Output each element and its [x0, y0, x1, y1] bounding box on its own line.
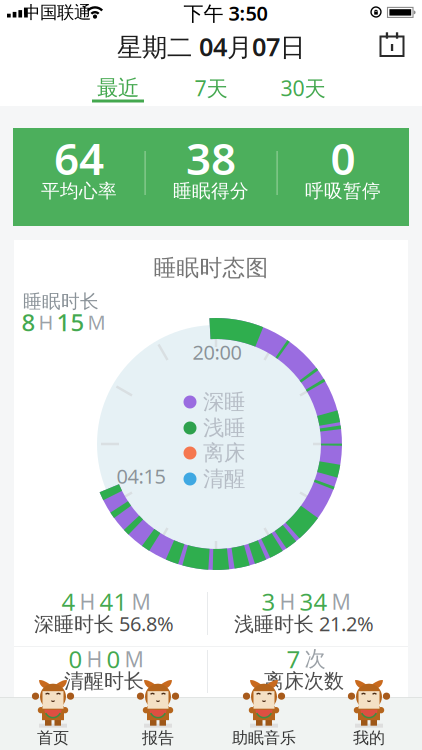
staticText: 7天 — [194, 74, 227, 102]
staticText: 64 — [54, 129, 104, 187]
staticText: H — [79, 587, 95, 616]
staticText: 8 — [21, 306, 35, 338]
staticText: M — [87, 309, 105, 335]
staticText: 平均心率 — [41, 179, 117, 202]
button[interactable]: 助眠音乐 — [219, 682, 309, 746]
staticText: 41 — [99, 586, 127, 617]
staticText: 首页 — [37, 728, 69, 748]
staticText: 我的 — [353, 728, 385, 748]
staticText: 38 — [186, 129, 236, 187]
staticText: 呼吸暂停 — [305, 179, 381, 202]
staticText: H — [38, 309, 53, 335]
staticText: 浅睡时长 21.2% — [234, 610, 374, 637]
staticText: 3 — [261, 586, 275, 617]
button[interactable]: 30天 — [268, 74, 338, 102]
button[interactable]: 我的 — [324, 682, 414, 746]
staticText: 4 — [61, 586, 75, 617]
staticText: 下午 3:50 — [183, 0, 267, 26]
button[interactable]: 首页 — [8, 682, 98, 746]
staticText: 浅睡 — [203, 415, 245, 441]
staticText: 0 — [106, 643, 120, 675]
button[interactable]: 7天 — [176, 74, 246, 102]
staticText: 20:00 — [192, 339, 241, 365]
staticText: 报告 — [142, 728, 174, 748]
staticText: M — [331, 587, 350, 616]
staticText: H — [86, 645, 102, 673]
staticText: 中国联通 — [23, 2, 91, 23]
staticText: M — [124, 645, 143, 673]
staticText: H — [279, 587, 295, 616]
staticText: 04:15 — [116, 463, 165, 489]
button[interactable]: 最近 — [83, 74, 153, 102]
staticText: 7 — [286, 643, 300, 675]
staticText: 0 — [330, 129, 355, 187]
staticText: 睡眠得分 — [173, 179, 249, 202]
staticText: 清醒 — [203, 466, 245, 492]
staticText: 34 — [299, 586, 327, 617]
staticText: 睡眠时长 — [23, 290, 99, 313]
staticText: 15 — [56, 306, 84, 338]
staticText: 深睡 — [203, 389, 245, 415]
staticText: 深睡时长 56.8% — [34, 610, 174, 637]
staticText: 离床 — [203, 440, 245, 466]
staticText: 最近 — [97, 75, 139, 101]
button[interactable] — [378, 30, 406, 58]
button[interactable]: 报告 — [113, 682, 203, 746]
staticText: 0 — [68, 643, 82, 675]
staticText: 助眠音乐 — [232, 728, 296, 748]
staticText: 星期二 04月07日 — [117, 30, 305, 63]
staticText: 离床次数 — [264, 669, 344, 693]
staticText: 次 — [304, 646, 325, 672]
staticText: 清醒时长 — [64, 669, 144, 693]
staticText: 30天 — [280, 74, 325, 102]
staticText: M — [131, 587, 150, 616]
staticText: 睡眠时态图 — [153, 254, 268, 282]
